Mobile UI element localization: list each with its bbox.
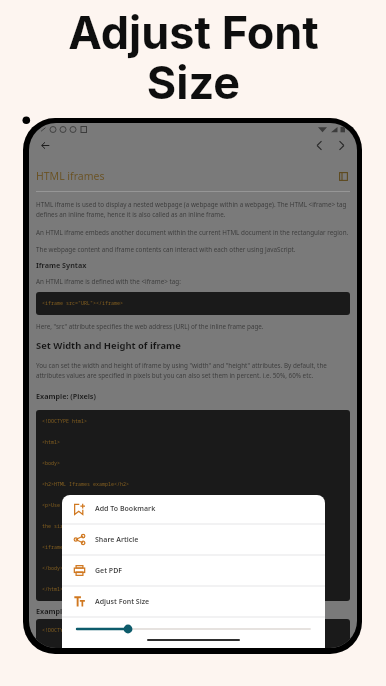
staticText: <html>: [42, 439, 61, 446]
staticText: </body>: [42, 565, 64, 572]
staticText: Example: (Pixels): [36, 391, 96, 401]
staticText: Adjust Font Size: [95, 597, 150, 607]
button[interactable]: Adjust Font Size: [62, 587, 325, 616]
staticText: Share Article: [95, 535, 139, 545]
staticText: the size of the iframe:</p>: [42, 523, 124, 530]
button[interactable]: Table of contents: [336, 169, 350, 183]
staticText: Add To Bookmark: [95, 504, 156, 514]
staticText: HTML iframes: [36, 169, 105, 183]
staticText: <body>: [42, 460, 61, 467]
staticText: You can set the width and height of ifra…: [36, 361, 350, 380]
staticText: <iframe src="URL"></iframe>: [42, 300, 124, 307]
staticText: Adjust Font Size: [68, 5, 319, 110]
staticText: Example:: [36, 606, 69, 616]
staticText: Iframe Syntax: [36, 260, 87, 270]
button[interactable]: Back: [37, 137, 54, 154]
staticText: Set Width and Height of iframe: [36, 339, 181, 352]
staticText: The webpage content and iframe contents …: [36, 245, 296, 254]
staticText: <h2>HTML Iframes example</h2>: [42, 481, 130, 488]
staticText: An HTML iframe is defined with the <ifra…: [36, 277, 181, 286]
button[interactable]: Next page: [333, 137, 350, 154]
staticText: HTML iframe is used to display a nested …: [36, 200, 350, 219]
button[interactable]: Font size slider: [62, 618, 325, 639]
staticText: An HTML iframe embeds another document w…: [36, 228, 349, 237]
staticText: <iframe src="https://www.javatpoint.com"…: [42, 544, 193, 551]
staticText: <p>Use the height and width attributes t…: [42, 502, 190, 509]
staticText: </html>: [42, 586, 64, 593]
staticText: Get PDF: [95, 566, 123, 576]
button[interactable]: Previous page: [311, 137, 328, 154]
staticText: <!DOCTYPE html>: [42, 627, 88, 634]
staticText: Here, "src" attribute specifies the web …: [36, 322, 264, 331]
button[interactable]: Share Article: [62, 525, 325, 554]
button[interactable]: Get PDF: [62, 556, 325, 585]
staticText: <!DOCTYPE html>: [42, 418, 88, 425]
button[interactable]: Add To Bookmark: [62, 495, 325, 523]
